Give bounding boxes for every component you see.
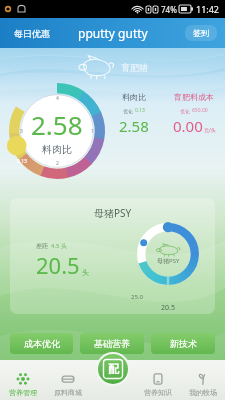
staticText: 11:42 xyxy=(196,3,220,15)
button[interactable]: 料肉比 xyxy=(107,92,161,136)
staticText: 育肥料成本 xyxy=(174,92,214,102)
staticText: 育肥猪 xyxy=(121,62,148,73)
staticText: 母猪PSY xyxy=(157,257,180,265)
button[interactable]: 成本优化 xyxy=(10,333,73,354)
staticText: 头 xyxy=(82,268,89,277)
staticText: 0.13 xyxy=(17,158,27,165)
button[interactable]: 配方 xyxy=(98,354,128,384)
staticText: 营养管理 xyxy=(9,388,37,397)
staticText: 元/头 xyxy=(204,127,216,134)
staticText: 4 xyxy=(56,95,59,102)
staticText: 4.5 头 xyxy=(51,242,68,250)
staticText: 2.58 xyxy=(31,107,83,142)
staticText: 料肉比 xyxy=(122,92,146,102)
button[interactable]: 原料商城 xyxy=(45,360,90,400)
staticText: 料肉比 xyxy=(42,143,72,156)
button[interactable]: 我的牧场 xyxy=(180,360,225,400)
staticText: 新技术 xyxy=(170,338,197,349)
staticText: 优化 xyxy=(180,108,190,114)
staticText: 优化 xyxy=(123,108,133,114)
staticText: 74% xyxy=(161,4,177,15)
button[interactable]: 基础营养 xyxy=(80,333,144,354)
button[interactable]: 母猪PSY xyxy=(10,198,215,314)
staticText: 签到 xyxy=(193,28,209,38)
staticText: 0.13 xyxy=(135,107,145,114)
button[interactable]: 育肥料成本 xyxy=(167,92,221,136)
staticText: 2.58 xyxy=(119,116,149,136)
staticText: pputty gutty xyxy=(78,25,148,41)
button[interactable]: 营养知识 xyxy=(135,360,180,400)
staticText: 基础营养 xyxy=(94,338,130,349)
staticText: 2 xyxy=(56,160,59,167)
staticText: 3 xyxy=(20,128,23,135)
button[interactable]: 每日优惠 xyxy=(10,24,54,43)
staticText: 0.00 xyxy=(173,116,203,136)
staticText: 我的牧场 xyxy=(189,388,217,397)
staticText: 每日优惠 xyxy=(14,28,50,39)
staticText: 原料商城 xyxy=(54,388,82,397)
staticText: 20.5 xyxy=(36,250,80,280)
staticText: 20.5 xyxy=(161,303,175,313)
staticText: 1 xyxy=(91,128,94,135)
button[interactable]: 营养管理 xyxy=(0,360,45,400)
staticText: 差距 xyxy=(36,242,48,250)
staticText: 母猪PSY xyxy=(94,206,132,220)
staticText: 营养知识 xyxy=(144,388,172,397)
button[interactable]: 新技术 xyxy=(151,333,215,354)
staticText: 650.00 xyxy=(192,107,208,114)
staticText: 配 xyxy=(108,362,119,376)
button[interactable]: 签到 xyxy=(185,25,217,41)
staticText: 25.0 xyxy=(131,293,143,301)
staticText: 成本优化 xyxy=(24,338,60,349)
button[interactable]: 4 xyxy=(8,82,106,180)
